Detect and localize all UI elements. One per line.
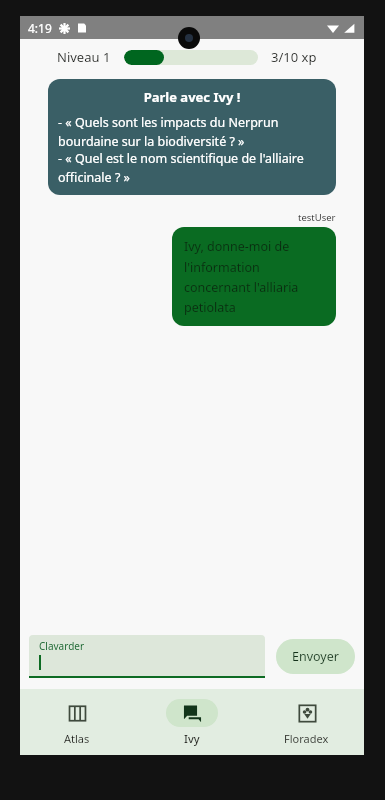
staticText: Niveau 1	[57, 48, 111, 66]
other: Ivy	[183, 704, 202, 723]
staticText: testUser	[298, 211, 336, 224]
button[interactable]: Clavarder	[29, 635, 265, 678]
button[interactable]: Ivy	[134, 689, 249, 755]
staticText: Clavarder	[39, 639, 85, 653]
button[interactable]: Atlas	[20, 689, 134, 755]
staticText: Ivy	[184, 731, 200, 746]
button[interactable]: Floradex	[249, 689, 364, 755]
button[interactable]: Envoyer	[276, 639, 355, 674]
other: Floradex	[298, 704, 317, 723]
staticText: - « Quel est le nom scientifique de l'al…	[58, 150, 326, 186]
staticText: - « Quels sont les impacts du Nerprun bo…	[58, 114, 326, 150]
staticText: 4:19	[28, 20, 52, 36]
staticText: 3/10 xp	[271, 48, 317, 66]
staticText: Floradex	[284, 731, 329, 746]
staticText: Parle avec Ivy !	[58, 88, 326, 106]
button[interactable]: Parle avec Ivy !	[48, 79, 336, 195]
button[interactable]: Ivy, donne-moi de l'information concerna…	[172, 227, 336, 326]
staticText: Envoyer	[292, 648, 339, 665]
staticText: Atlas	[64, 731, 90, 746]
staticText: Ivy, donne-moi de l'information concerna…	[184, 238, 324, 315]
other: Atlas	[68, 704, 87, 723]
